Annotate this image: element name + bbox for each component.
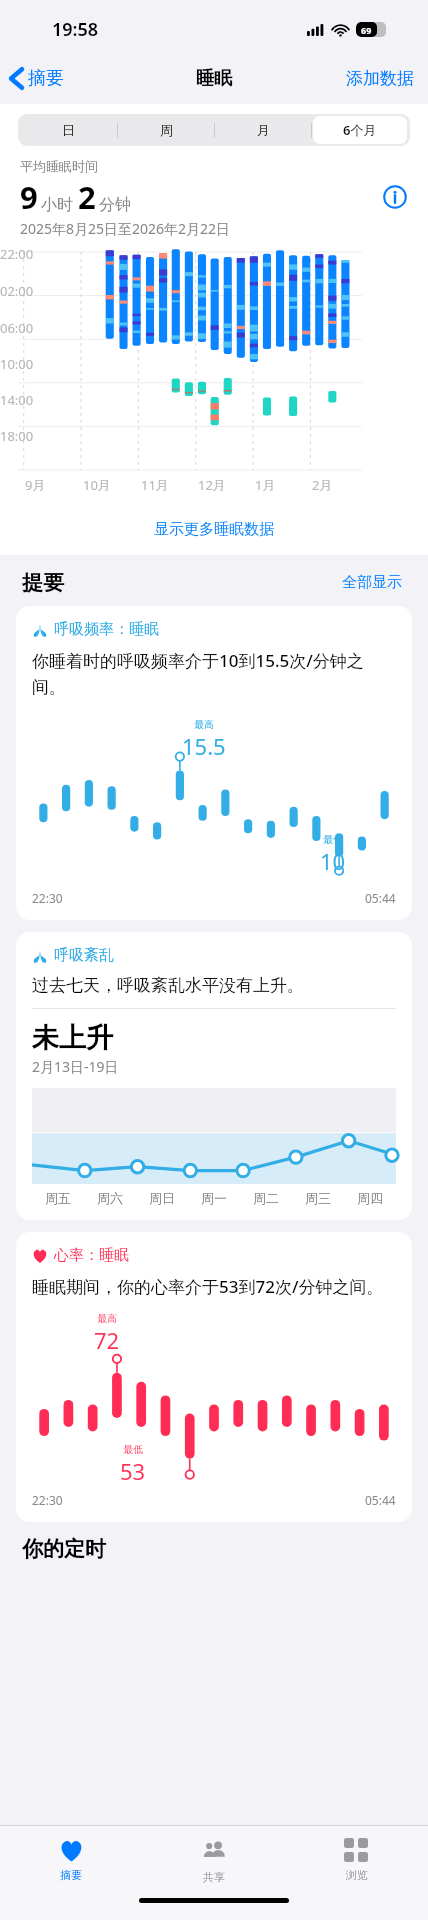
staticText: 未上升	[32, 1021, 113, 1055]
staticText: 日	[62, 122, 75, 138]
staticText: 周一	[201, 1190, 227, 1206]
staticText: 53	[120, 1456, 146, 1486]
staticText: 周三	[305, 1190, 331, 1206]
staticText: 周四	[357, 1190, 383, 1206]
staticText: 睡眠	[196, 67, 232, 90]
staticText: 浏览	[346, 1868, 368, 1882]
staticText: 19:58	[52, 17, 99, 42]
button[interactable]: 6个月	[313, 116, 407, 144]
button[interactable]: 周	[119, 116, 213, 144]
button[interactable]: 浏览	[285, 1826, 428, 1894]
button[interactable]: 呼吸频率：睡眠	[16, 606, 412, 920]
staticText: 最低	[323, 833, 343, 846]
staticText: 周日	[149, 1190, 175, 1206]
staticText: 12月	[198, 476, 226, 494]
staticText: 周五	[45, 1190, 71, 1206]
staticText: 2月13日-19日	[32, 1057, 119, 1076]
staticText: 你的定时	[22, 1536, 106, 1562]
staticText: 11月	[141, 476, 169, 494]
button[interactable]: 信息	[382, 184, 408, 210]
button[interactable]: 心率：睡眠	[16, 1232, 412, 1522]
staticText: 分钟	[99, 195, 131, 215]
staticText: 6个月	[343, 121, 377, 139]
button[interactable]: 摘要	[0, 63, 72, 94]
staticText: 2月	[312, 476, 333, 494]
staticText: 2	[78, 176, 96, 218]
staticText: 显示更多睡眠数据	[154, 520, 274, 539]
staticText: 全部显示	[342, 573, 402, 592]
staticText: 22:30	[32, 1492, 63, 1508]
button[interactable]: 全部显示	[338, 569, 406, 596]
staticText: 2025年8月25日至2026年2月22日	[20, 219, 231, 238]
staticText: 15.5	[182, 731, 226, 761]
staticText: 呼吸紊乱	[54, 946, 114, 965]
staticText: 06:00	[0, 319, 34, 337]
staticText: 14:00	[0, 391, 34, 409]
button[interactable]: 摘要	[0, 1826, 142, 1894]
staticText: 05:44	[365, 890, 396, 906]
staticText: 69	[361, 24, 372, 36]
button[interactable]: 月	[216, 116, 310, 144]
staticText: 18:00	[0, 427, 34, 445]
staticText: 10:00	[0, 355, 34, 373]
staticText: 提要	[22, 570, 64, 596]
staticText: 9	[20, 176, 38, 218]
button[interactable]: 共享	[142, 1826, 285, 1894]
staticText: 月	[257, 122, 270, 138]
button[interactable]: 呼吸紊乱	[16, 932, 412, 1220]
staticText: 10	[320, 846, 346, 876]
staticText: 最高	[97, 1312, 117, 1325]
staticText: 过去七天，呼吸紊乱水平没有上升。	[32, 975, 304, 996]
staticText: 72	[94, 1325, 120, 1355]
button[interactable]: 添加数据	[332, 62, 428, 95]
staticText: 周	[160, 122, 173, 138]
staticText: 05:44	[365, 1492, 396, 1508]
staticText: 10月	[83, 476, 111, 494]
staticText: 9月	[25, 476, 46, 494]
button[interactable]: 显示更多睡眠数据	[0, 508, 428, 551]
staticText: 小时	[41, 195, 73, 215]
staticText: 呼吸频率：睡眠	[54, 620, 159, 639]
staticText: 周二	[253, 1190, 279, 1206]
staticText: 22:00	[0, 245, 34, 263]
staticText: 周六	[97, 1190, 123, 1206]
staticText: 1月	[255, 476, 276, 494]
staticText: 最低	[123, 1443, 143, 1456]
staticText: 摘要	[60, 1868, 82, 1882]
staticText: 添加数据	[346, 68, 414, 89]
button[interactable]: 日	[21, 116, 116, 144]
staticText: 22:30	[32, 890, 63, 906]
staticText: 共享	[203, 1870, 225, 1884]
staticText: 平均睡眠时间	[20, 158, 98, 174]
staticText: 02:00	[0, 282, 34, 300]
staticText: 你睡着时的呼吸频率介于10到15.5次/分钟之间。	[32, 649, 396, 698]
staticText: 心率：睡眠	[54, 1246, 129, 1265]
staticText: 最高	[194, 718, 214, 731]
staticText: 摘要	[28, 67, 64, 90]
staticText: 睡眠期间，你的心率介于53到72次/分钟之间。	[32, 1275, 384, 1298]
